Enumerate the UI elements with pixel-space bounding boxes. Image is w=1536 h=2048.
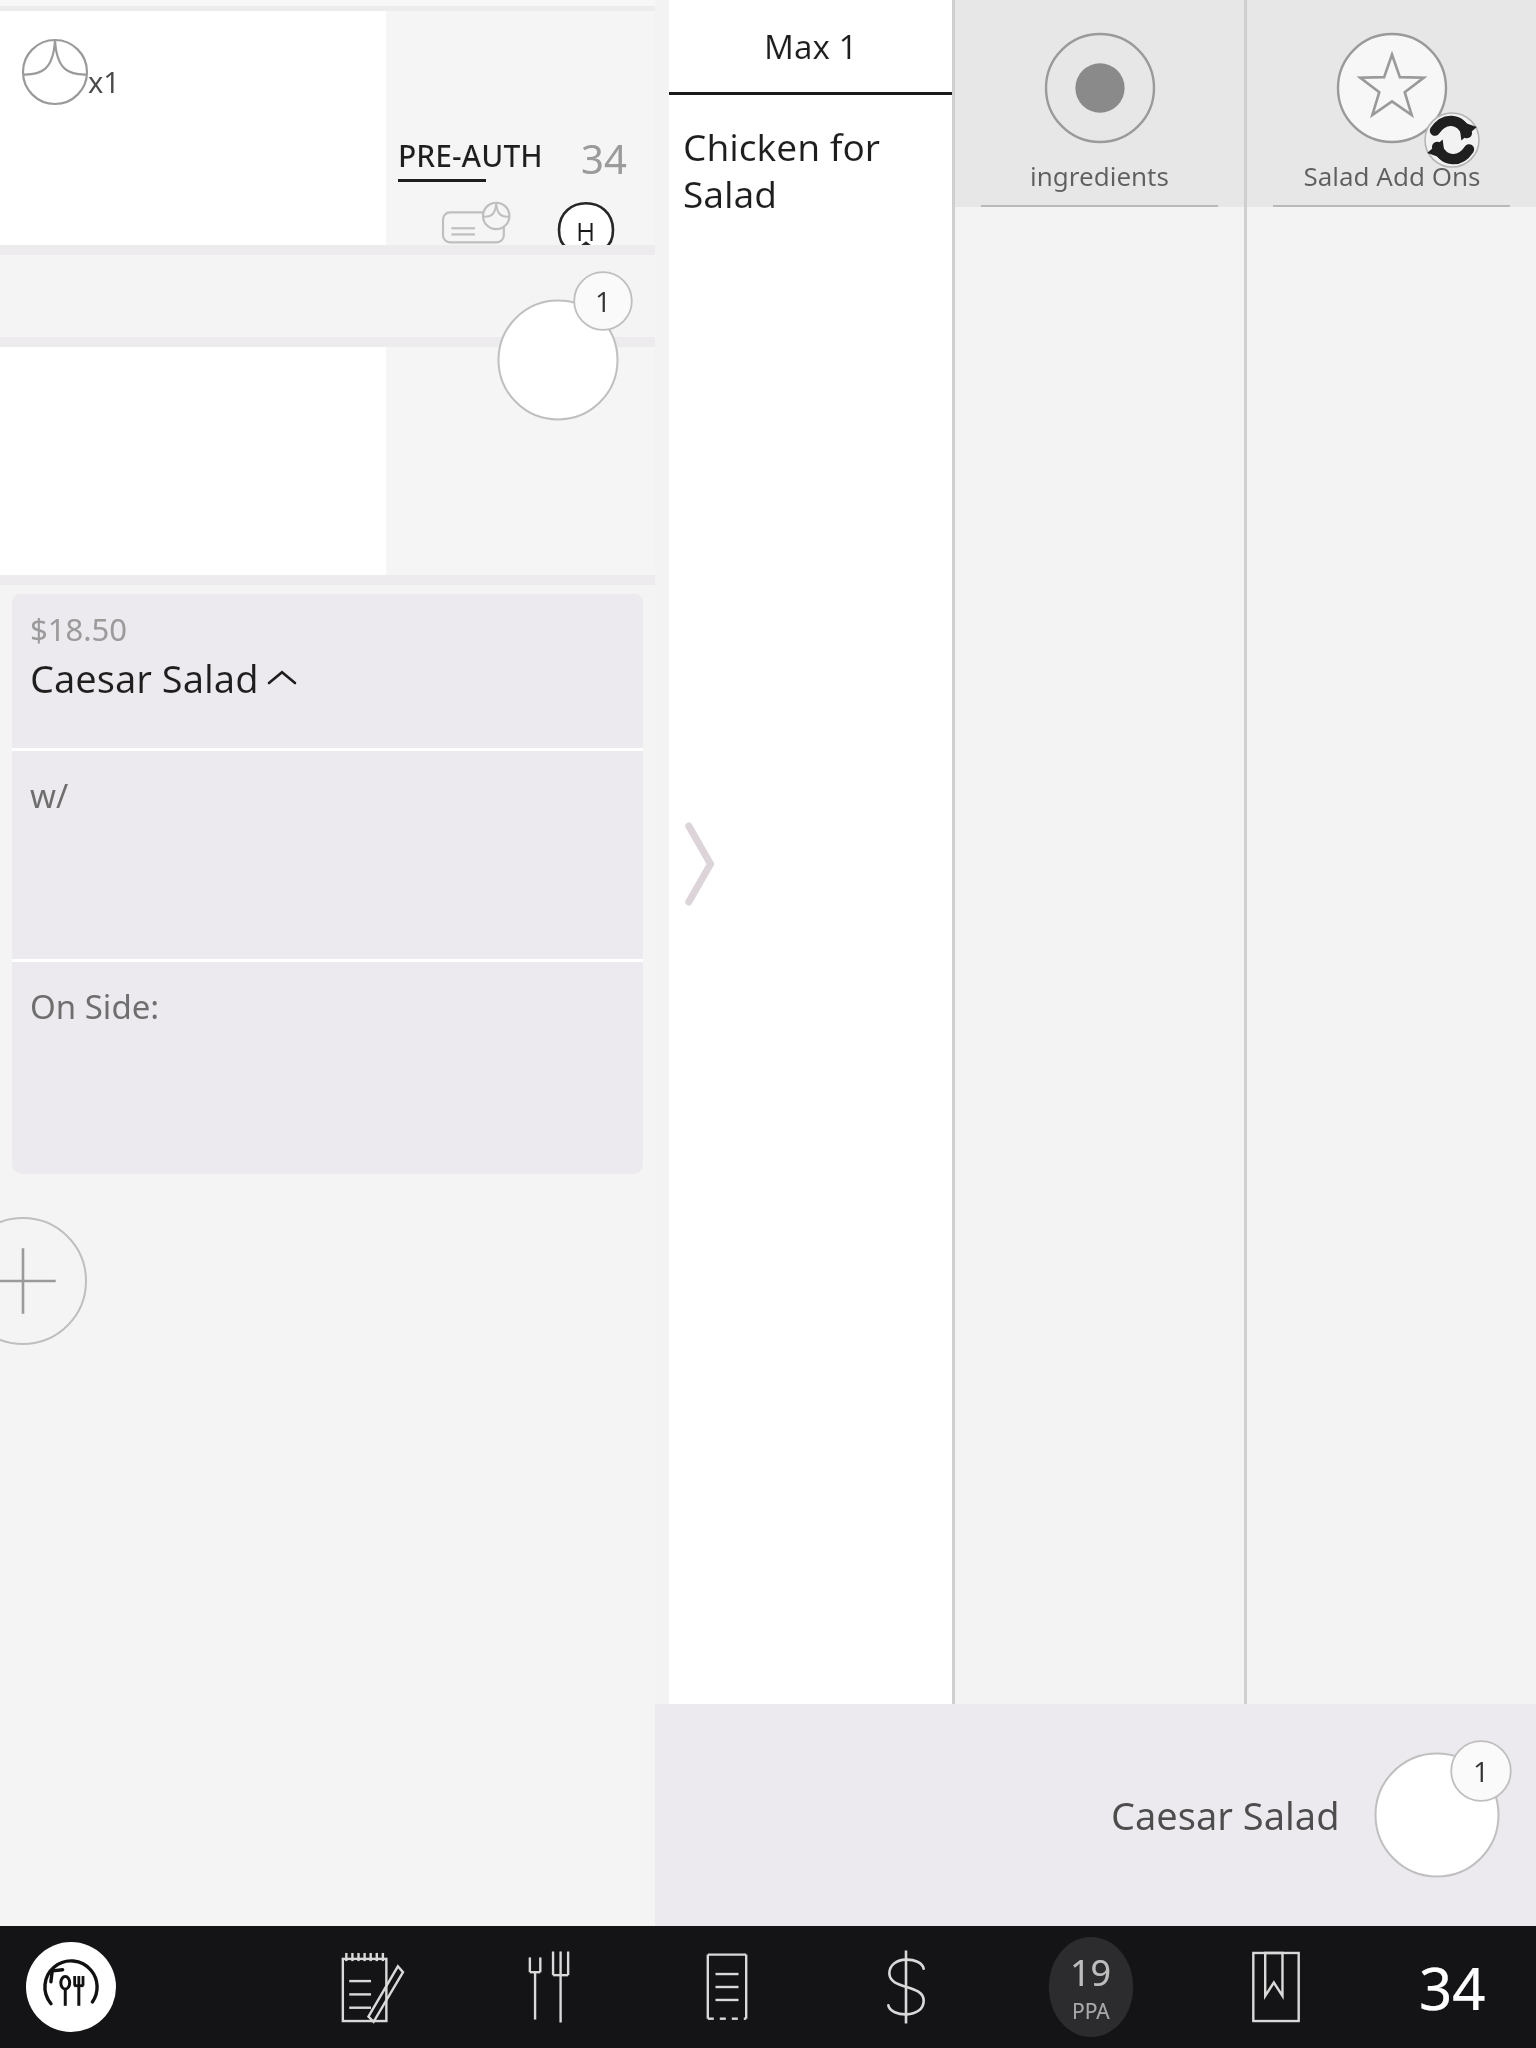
button[interactable]: x1	[0, 11, 655, 245]
staticText: On Side:	[30, 984, 160, 1029]
button[interactable]: 34	[1413, 1948, 1492, 2027]
staticText: 34	[581, 131, 627, 185]
button[interactable]: Notes	[330, 1937, 412, 2037]
button[interactable]: On Side:	[12, 962, 643, 1174]
button[interactable]: Add item	[0, 1216, 88, 1346]
staticText: Chicken for Salad	[683, 121, 881, 219]
staticText: 34	[1419, 1948, 1486, 2027]
staticText: $18.50	[30, 608, 127, 650]
button[interactable]: Table H	[557, 201, 615, 245]
button[interactable]: Seat 1	[497, 299, 619, 421]
button[interactable]: Payment card	[443, 201, 519, 245]
staticText: H	[576, 213, 596, 245]
staticText: x1	[88, 62, 120, 101]
button[interactable]: PRE-AUTH	[398, 135, 543, 182]
staticText: Caesar Salad	[30, 652, 259, 704]
button[interactable]: Bookmark	[1235, 1937, 1317, 2037]
button[interactable]	[0, 347, 655, 575]
button[interactable]: Chicken for Salad	[669, 95, 952, 1704]
button[interactable]: 19	[1043, 1937, 1139, 2037]
button[interactable]: Reorder	[26, 1942, 116, 2032]
staticText: 1	[1473, 1752, 1490, 1790]
button[interactable]: Payments	[865, 1937, 947, 2037]
button[interactable]: w/	[12, 751, 643, 959]
button[interactable]: $18.50	[12, 594, 643, 748]
button[interactable]: Courses	[508, 1937, 590, 2037]
staticText: PRE-AUTH	[398, 135, 543, 176]
staticText: 19	[1070, 1948, 1112, 1997]
staticText: ingredients	[1030, 158, 1169, 193]
staticText: 1	[595, 282, 612, 320]
staticText: w/	[30, 773, 69, 818]
staticText: Caesar Salad	[1111, 1789, 1340, 1841]
staticText: Salad Add Ons	[1303, 158, 1481, 193]
button[interactable]: ingredients	[955, 0, 1244, 207]
staticText: Max 1	[764, 24, 858, 69]
button[interactable]: Caesar Salad seat 1	[1374, 1752, 1500, 1878]
button[interactable]: Salad Add Ons	[1247, 0, 1536, 207]
button[interactable]: Receipt	[686, 1937, 768, 2037]
staticText: PPA	[1072, 1997, 1110, 2026]
